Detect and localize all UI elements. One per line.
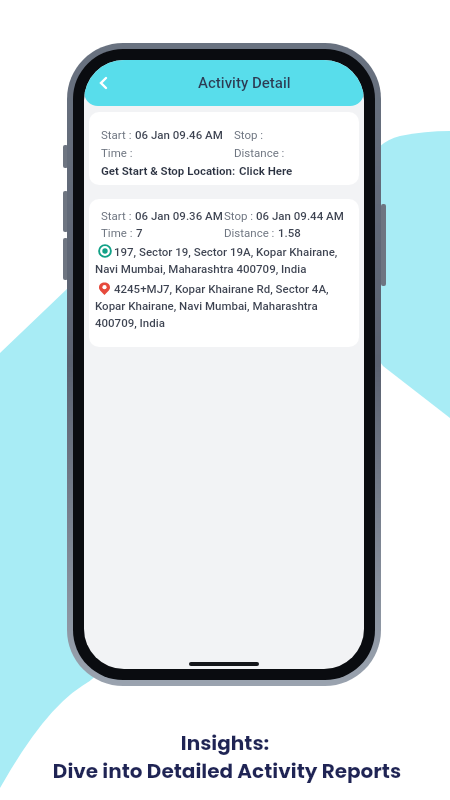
staticText: Activity Detail	[198, 74, 291, 92]
staticText: Start :	[101, 128, 135, 141]
staticText: Distance :	[234, 146, 288, 159]
staticText: Get Start & Stop Location:	[101, 164, 239, 177]
staticText: 197, Sector 19, Sector 19A, Kopar Khaira…	[114, 245, 338, 258]
staticText: 400709, India	[95, 316, 165, 329]
staticText: 06 Jan 09.44 AM	[256, 209, 344, 222]
staticText: 7	[136, 226, 143, 239]
staticText: Time :	[101, 226, 136, 239]
staticText: 06 Jan 09.46 AM	[135, 128, 223, 141]
button[interactable]: Click Here	[239, 164, 293, 177]
staticText: Time :	[101, 146, 136, 159]
staticText: Start :	[101, 209, 135, 222]
staticText: Insights:	[0, 729, 450, 757]
staticText: Stop :	[234, 128, 264, 141]
button[interactable]	[84, 60, 124, 106]
staticText: 06 Jan 09.36 AM	[135, 209, 223, 222]
staticText: Distance :	[224, 226, 278, 239]
staticText: Dive into Detailed Activity Reports	[2, 757, 450, 785]
staticText: Click Here	[239, 164, 293, 177]
staticText: 1.58	[278, 226, 301, 239]
staticText: Stop :	[224, 209, 256, 222]
staticText: Navi Mumbai, Maharashtra 400709, India	[95, 262, 307, 275]
staticText: Kopar Khairane, Navi Mumbai, Maharashtra	[95, 299, 318, 312]
staticText: 4245+MJ7, Kopar Khairane Rd, Sector 4A,	[114, 282, 329, 295]
